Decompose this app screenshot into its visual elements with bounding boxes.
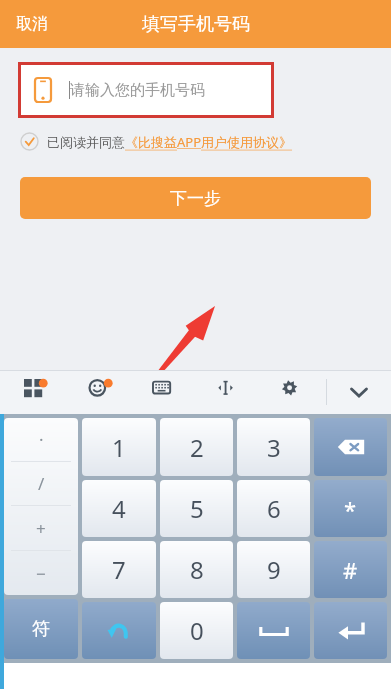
staticText: 下一步 <box>170 188 221 209</box>
staticText: 已阅读并同意 <box>47 134 125 150</box>
button[interactable]: Emoji <box>69 370 134 414</box>
button[interactable]: Text cursor <box>198 370 262 414</box>
button[interactable]: 已阅读并同意 <box>20 132 293 151</box>
staticText: 填写手机号码 <box>142 13 250 36</box>
staticText: − <box>36 562 46 585</box>
button[interactable]: 2 <box>160 418 233 476</box>
staticText: 2 <box>190 431 204 464</box>
staticText: 8 <box>190 553 204 586</box>
button[interactable]: Enter <box>314 602 387 659</box>
button[interactable]: 符 <box>4 599 78 659</box>
staticText: 符 <box>32 618 50 641</box>
button[interactable]: Keyboard <box>134 370 198 414</box>
staticText: 6 <box>267 492 281 525</box>
button[interactable]: 8 <box>160 541 233 598</box>
staticText: # <box>343 555 358 585</box>
staticText: 7 <box>112 553 126 586</box>
staticText: + <box>36 517 46 540</box>
button[interactable]: Delete <box>314 418 387 476</box>
button[interactable]: 请输入您的手机号码 <box>21 65 271 115</box>
button[interactable]: 6 <box>237 480 310 537</box>
button[interactable]: 3 <box>237 418 310 476</box>
button[interactable]: Apps <box>4 370 69 414</box>
staticText: 5 <box>190 492 204 525</box>
button[interactable]: Hide keyboard <box>327 370 391 414</box>
button[interactable]: 1 <box>82 418 156 476</box>
staticText: 请输入您的手机号码 <box>70 81 205 100</box>
staticText: / <box>38 472 45 495</box>
button[interactable]: * <box>314 480 387 537</box>
button[interactable]: Undo <box>82 602 156 659</box>
staticText: · <box>39 428 44 451</box>
button[interactable]: 5 <box>160 480 233 537</box>
button[interactable]: 7 <box>82 541 156 598</box>
staticText: 0 <box>190 614 204 647</box>
button[interactable]: 《比搜益APP用户使用协议》 <box>125 133 293 151</box>
button[interactable]: 9 <box>237 541 310 598</box>
button[interactable]: · <box>4 418 78 595</box>
staticText: 3 <box>267 431 281 464</box>
staticText: * <box>344 494 357 524</box>
button[interactable]: Settings <box>262 370 326 414</box>
button[interactable]: 0 <box>160 602 233 659</box>
button[interactable]: # <box>314 541 387 598</box>
button[interactable]: 4 <box>82 480 156 537</box>
staticText: 4 <box>112 492 126 525</box>
button[interactable]: 取消 <box>0 4 64 44</box>
staticText: 1 <box>112 431 126 464</box>
button[interactable]: Space <box>237 602 310 659</box>
staticText: 9 <box>267 553 281 586</box>
button[interactable]: 下一步 <box>20 177 371 219</box>
staticText: 取消 <box>16 14 48 34</box>
